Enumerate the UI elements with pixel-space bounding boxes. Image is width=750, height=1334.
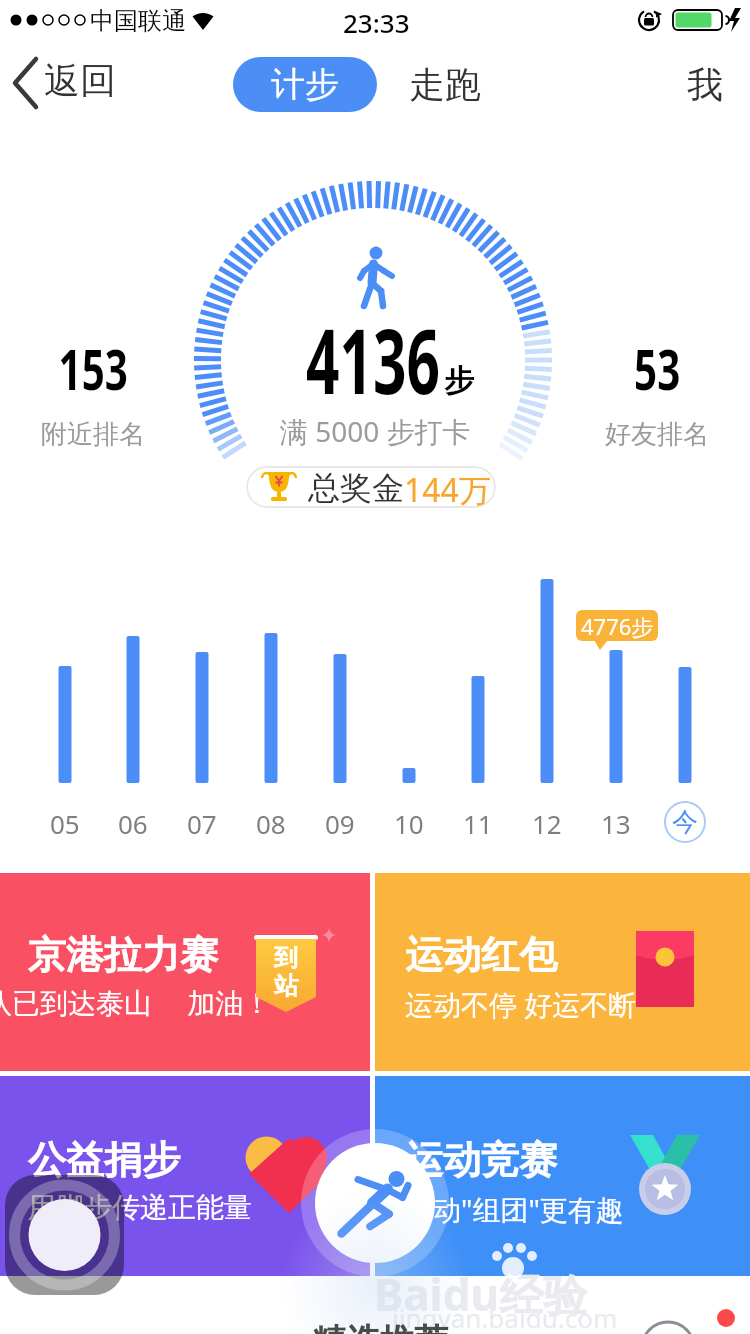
staticText: 到 xyxy=(274,943,298,973)
staticText: 用脚步传递正能量 xyxy=(28,1190,252,1225)
staticText: 队已到达泰山 加油！ xyxy=(0,983,272,1021)
staticText: 09 xyxy=(325,806,355,841)
staticText: 07 xyxy=(187,806,217,841)
staticText: 公益捐步 xyxy=(28,1136,180,1184)
staticText: 走跑 xyxy=(409,62,481,107)
button[interactable] xyxy=(5,1175,124,1295)
button[interactable]: 走跑 xyxy=(395,57,495,112)
button[interactable]: 计步 xyxy=(233,57,377,112)
button[interactable]: 返回 xyxy=(0,52,130,112)
staticText: jingyan.baidu.com xyxy=(392,1300,618,1334)
staticText: 4776步 xyxy=(581,611,654,641)
staticText: 步 xyxy=(444,362,474,400)
staticText: 今 xyxy=(672,806,698,839)
staticText: 运动"组团"更有趣 xyxy=(405,1190,624,1228)
button[interactable]: 公益捐步 xyxy=(0,1076,370,1276)
button[interactable]: 京港拉力赛 xyxy=(0,873,370,1071)
button[interactable]: 运动红包 xyxy=(375,873,750,1071)
button[interactable]: 今 xyxy=(655,806,715,839)
staticText: 中国联通 xyxy=(90,6,186,36)
staticText: 运动竞赛 xyxy=(405,1136,557,1184)
staticText: 144万 xyxy=(404,468,491,508)
staticText: 运动红包 xyxy=(405,931,557,979)
staticText: 附近排名 xyxy=(41,418,145,451)
staticText: 站 xyxy=(274,971,298,1001)
staticText: 23:33 xyxy=(343,5,410,40)
staticText: Baidu经验 xyxy=(374,1264,588,1324)
staticText: 好友排名 xyxy=(605,418,709,451)
staticText: 满 5000 步打卡 xyxy=(280,412,471,450)
staticText: 精选推荐 xyxy=(312,1320,448,1334)
staticText: 08 xyxy=(256,806,286,841)
staticText: 06 xyxy=(118,806,148,841)
staticText: 京港拉力赛 xyxy=(28,931,218,979)
staticText: 计步 xyxy=(271,63,339,106)
staticText: 05 xyxy=(50,806,80,841)
staticText: 返回 xyxy=(44,58,116,103)
staticText: 153 xyxy=(59,330,128,406)
staticText: 11 xyxy=(463,806,493,841)
button[interactable] xyxy=(315,1143,435,1263)
staticText: 13 xyxy=(601,806,631,841)
staticText: 运动不停 好运不断 xyxy=(405,985,637,1023)
button[interactable]: 总奖金 xyxy=(246,466,496,508)
staticText: 总奖金 xyxy=(308,468,404,508)
staticText: 10 xyxy=(394,806,424,841)
staticText: 53 xyxy=(634,330,681,406)
staticText: 12 xyxy=(532,806,562,841)
staticText: 我 xyxy=(687,62,723,107)
button[interactable]: 运动竞赛 xyxy=(375,1076,750,1276)
staticText: 4136 xyxy=(306,298,440,421)
button[interactable]: 我 xyxy=(670,57,740,112)
